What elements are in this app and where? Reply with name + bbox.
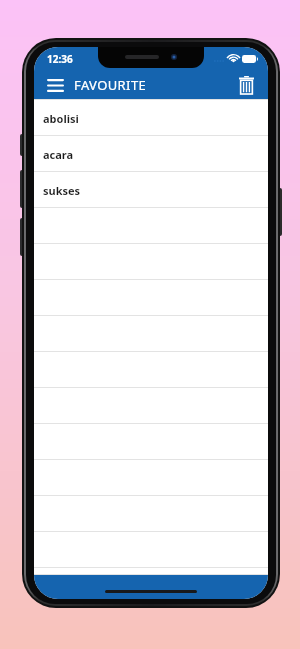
button[interactable]: acara <box>34 136 268 172</box>
button[interactable]: Open navigation menu <box>44 74 66 96</box>
button[interactable] <box>34 316 268 352</box>
staticText: sukses <box>43 183 81 198</box>
button[interactable] <box>34 352 268 388</box>
button[interactable]: Delete all favourites <box>234 73 258 97</box>
staticText: FAVOURITE <box>74 76 147 94</box>
button[interactable]: Home <box>105 590 197 593</box>
button[interactable]: abolisi <box>34 100 268 136</box>
staticText: abolisi <box>43 111 79 126</box>
button[interactable] <box>34 280 268 316</box>
button[interactable] <box>34 532 268 568</box>
button[interactable] <box>34 460 268 496</box>
staticText: acara <box>43 147 74 162</box>
button[interactable] <box>34 208 268 244</box>
button[interactable] <box>34 424 268 460</box>
button[interactable]: sukses <box>34 172 268 208</box>
staticText: 12:36 <box>47 52 73 66</box>
button[interactable] <box>34 244 268 280</box>
button[interactable] <box>34 496 268 532</box>
button[interactable] <box>34 568 268 575</box>
button[interactable] <box>34 388 268 424</box>
